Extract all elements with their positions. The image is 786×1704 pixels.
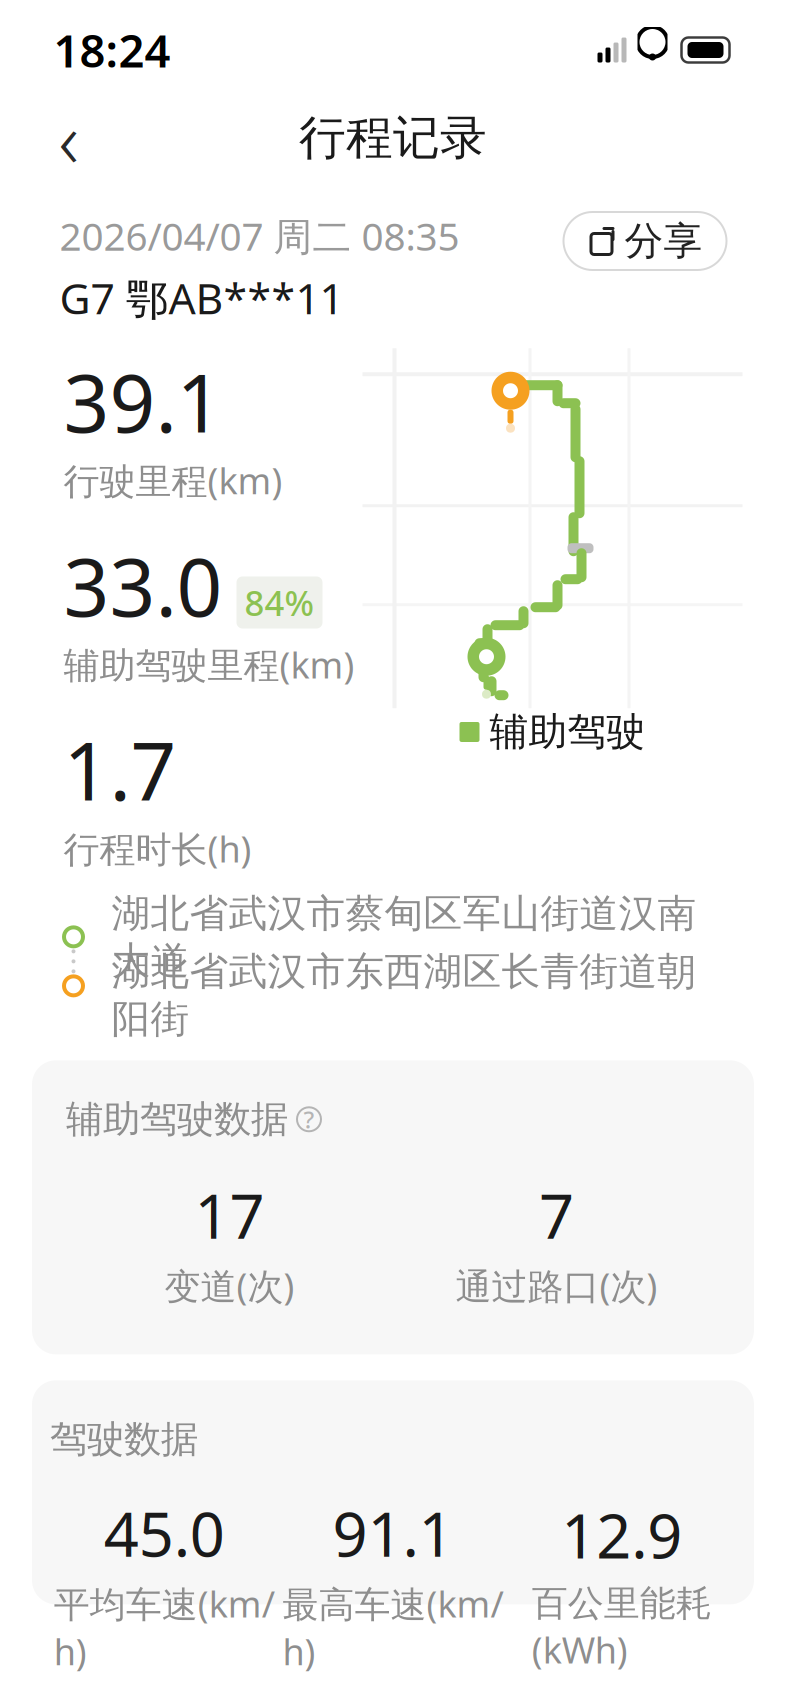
staticText: 84%	[244, 579, 314, 625]
staticText: 行程记录	[299, 109, 487, 167]
staticText: 33.0	[63, 532, 222, 638]
button[interactable]: 分享	[563, 212, 726, 270]
staticText: 12.9	[561, 1494, 682, 1575]
staticText: 2026/04/07 周二 08:35	[59, 210, 459, 261]
staticText: 17	[194, 1174, 264, 1256]
staticText: 通过路口(次)	[455, 1262, 657, 1309]
staticText: 最高车速(km/h)	[282, 1580, 503, 1675]
staticText: 变道(次)	[164, 1262, 294, 1309]
staticText: 辅助驾驶	[489, 708, 645, 756]
button[interactable]: 辅助驾驶数据说明	[66, 1096, 322, 1142]
staticText: 行程时长(h)	[63, 825, 251, 872]
staticText: G7 鄂AB***11	[59, 269, 343, 326]
staticText: 平均车速(km/h)	[54, 1580, 275, 1675]
staticText: 18:24	[53, 20, 170, 80]
staticText: ‹	[58, 87, 78, 189]
staticText: 45.0	[104, 1492, 225, 1574]
staticText: 辅助驾驶里程(km)	[63, 640, 354, 688]
staticText: 39.1	[63, 348, 222, 454]
staticText: 91.1	[332, 1492, 453, 1574]
staticText: 辅助驾驶数据	[66, 1096, 288, 1142]
staticText: 百公里能耗(kWh)	[532, 1581, 712, 1673]
staticText: ?	[303, 1103, 314, 1135]
button[interactable]: 返回	[37, 107, 99, 169]
staticText: 7	[539, 1174, 574, 1256]
staticText: 1.7	[63, 716, 176, 822]
staticText: 行驶里程(km)	[63, 456, 282, 504]
staticText: 湖北省武汉市东西湖区长青街道朝阳街	[111, 948, 696, 1043]
staticText: 驾驶数据	[50, 1416, 198, 1462]
staticText: 分享	[624, 217, 702, 265]
staticText: 湖北省武汉市蔡甸区军山街道汉南大道	[111, 890, 696, 985]
